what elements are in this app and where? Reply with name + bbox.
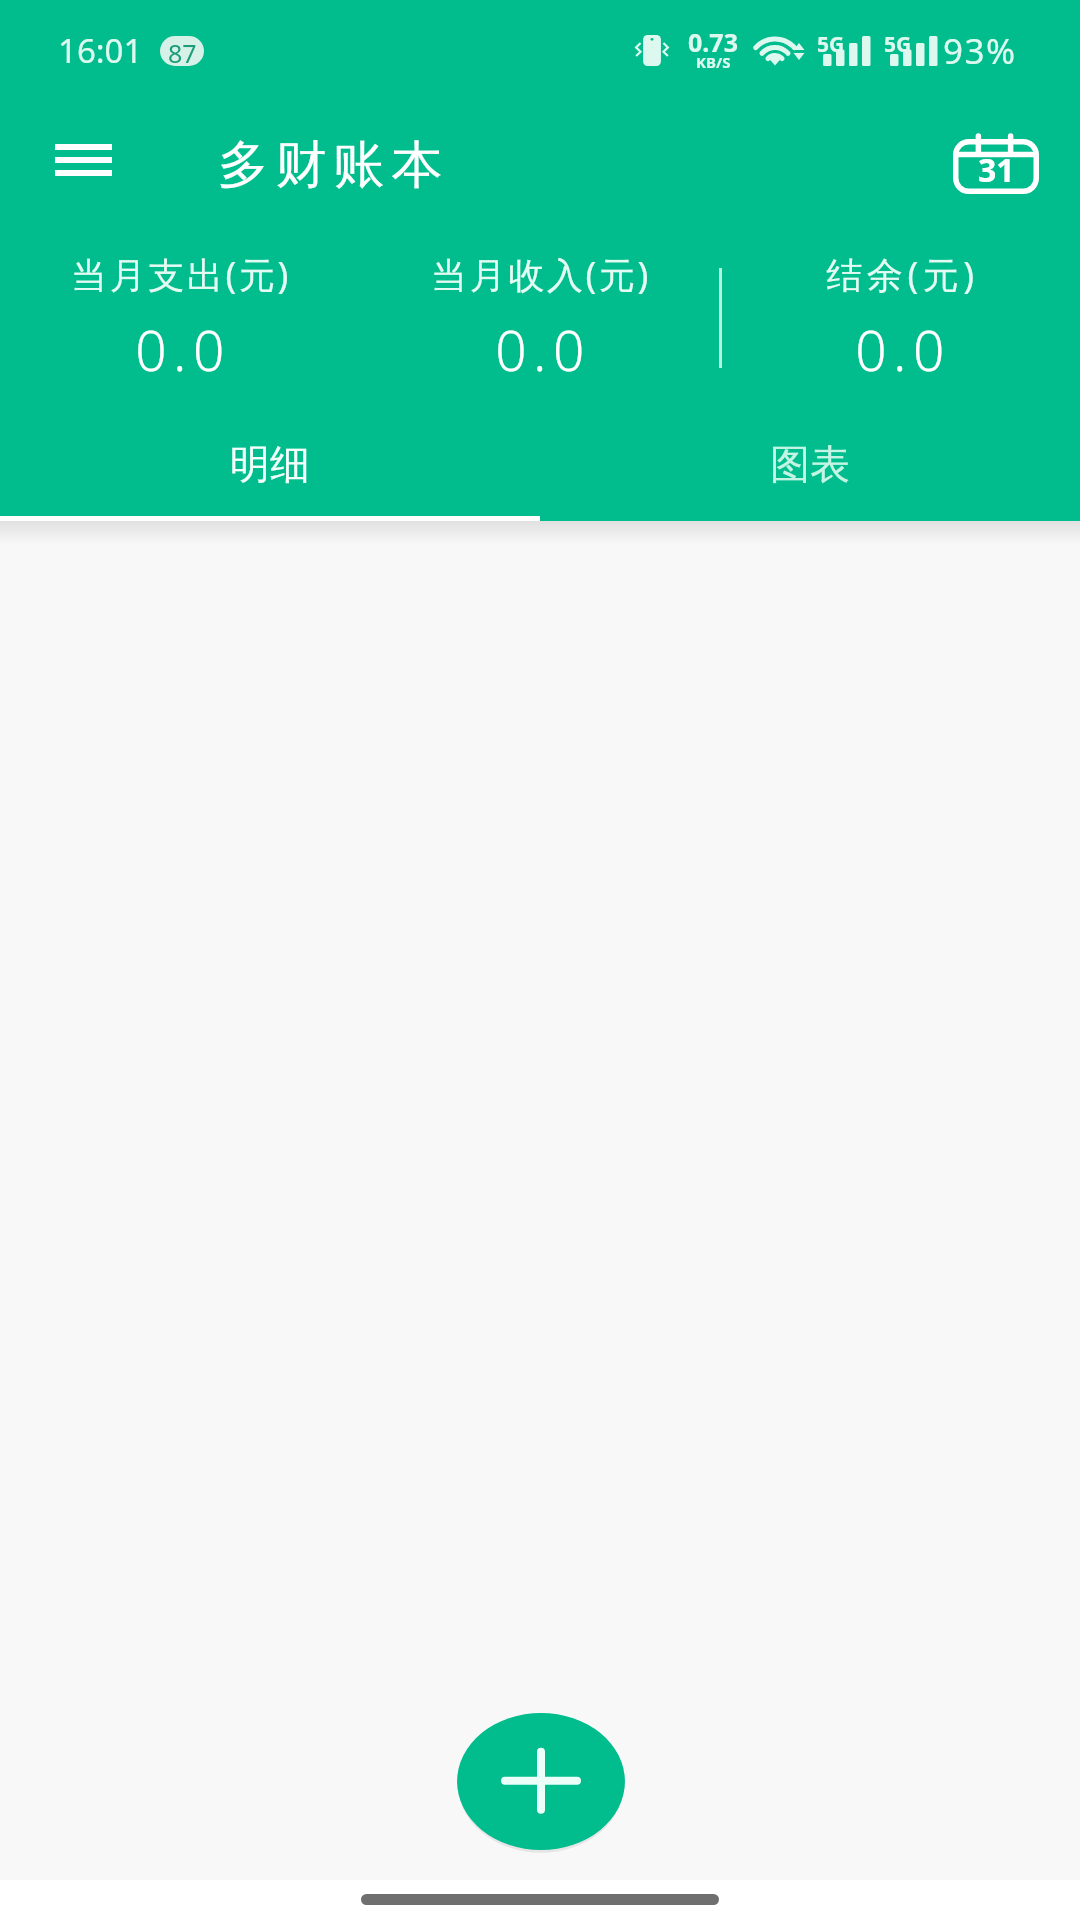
staticText: KB/S xyxy=(696,52,731,72)
staticText: 多财账本 xyxy=(214,133,446,197)
staticText: 5G xyxy=(817,30,845,59)
button[interactable]: 明细 xyxy=(0,410,540,521)
staticText: 0.0 xyxy=(495,312,591,387)
button[interactable]: 图表 xyxy=(540,410,1080,521)
staticText: 图表 xyxy=(770,439,850,489)
button[interactable]: Add record xyxy=(453,1708,629,1855)
staticText: 5G xyxy=(884,30,912,59)
staticText: 明细 xyxy=(230,439,310,489)
staticText: 16:01 xyxy=(58,28,143,73)
staticText: 0.0 xyxy=(855,312,951,387)
staticText: 结余(元) xyxy=(826,250,979,299)
staticText: 0.0 xyxy=(135,312,231,387)
button[interactable]: Menu xyxy=(39,121,127,199)
staticText: 31 xyxy=(978,148,1015,192)
staticText: 93% xyxy=(943,27,1017,75)
staticText: 当月收入(元) xyxy=(431,250,651,299)
staticText: 当月支出(元) xyxy=(71,250,291,299)
staticText: 0.73 xyxy=(688,25,738,57)
button[interactable]: Calendar xyxy=(938,123,1054,207)
staticText: 87 xyxy=(168,36,197,66)
